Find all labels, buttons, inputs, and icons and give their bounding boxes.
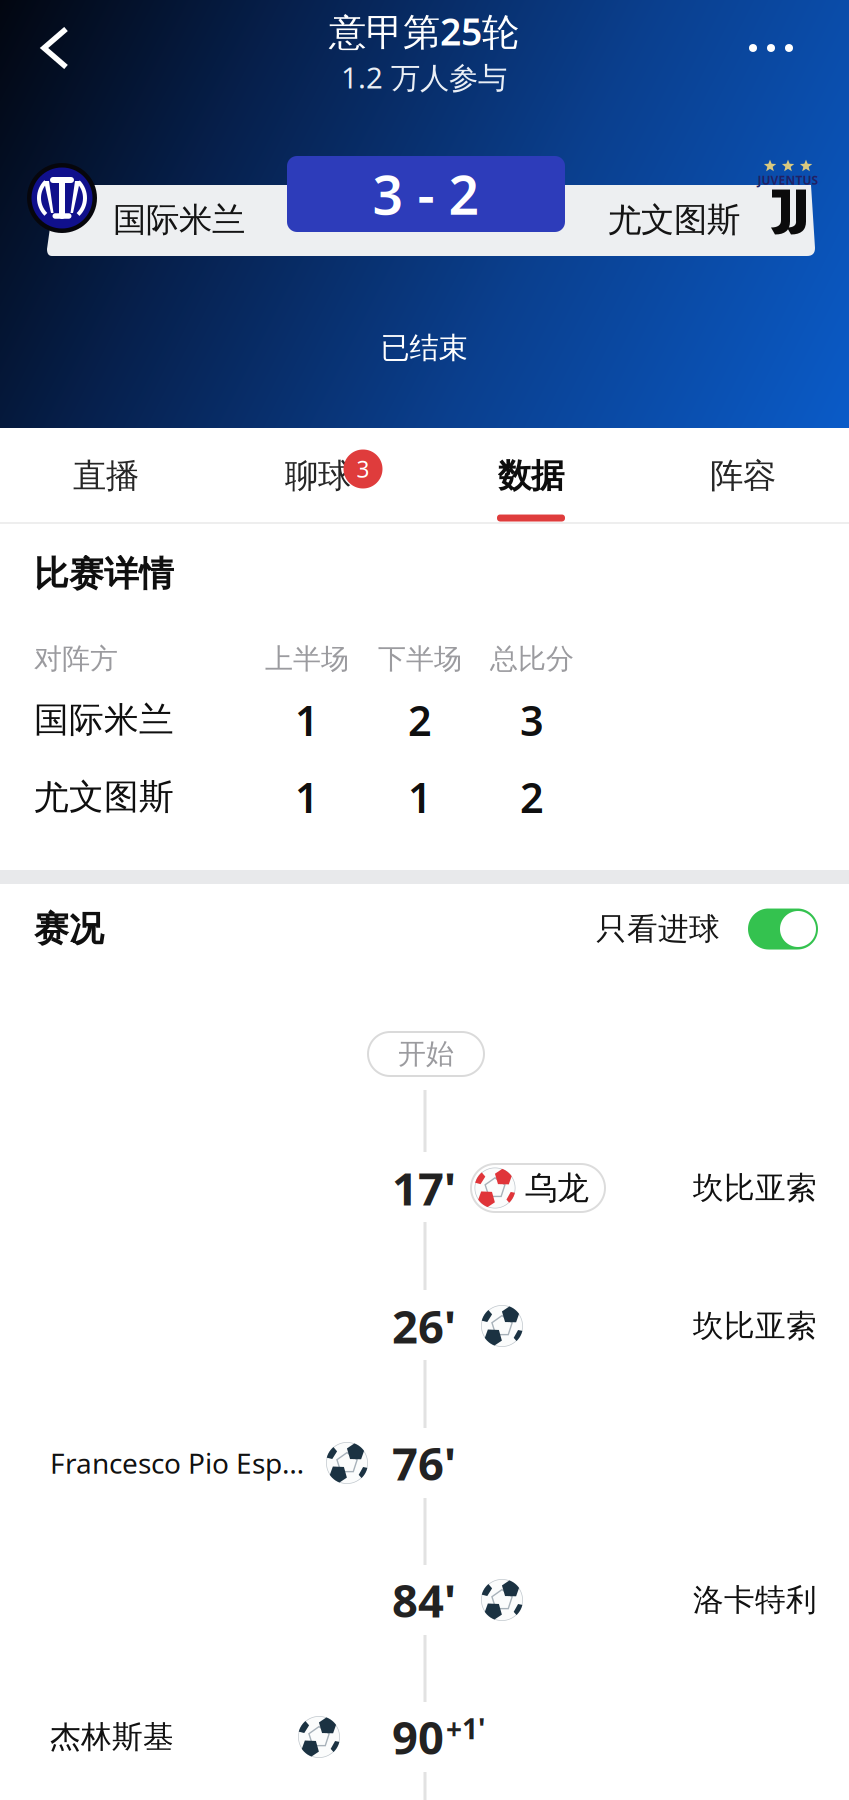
staticText: 84' [392, 1570, 456, 1630]
staticText: 数据 [498, 455, 564, 496]
button[interactable]: More [723, 8, 819, 88]
staticText: 2 [520, 770, 544, 824]
staticText: 杰林斯基 [50, 1718, 174, 1756]
staticText: 1 [295, 770, 319, 824]
staticText: 洛卡特利 [693, 1581, 817, 1619]
staticText: 赛况 [34, 908, 104, 950]
staticText: 已结束 [380, 330, 467, 366]
staticText: Francesco Pio Esp… [50, 1444, 304, 1482]
staticText: 尤文图斯 [34, 776, 174, 818]
staticText: 比赛详情 [34, 553, 174, 595]
staticText: 1 [408, 770, 432, 824]
staticText: 尤文图斯 [608, 199, 740, 240]
staticText: 总比分 [490, 642, 574, 676]
staticText: 乌龙 [525, 1168, 589, 1208]
staticText: 开始 [398, 1037, 454, 1071]
staticText: 意甲第25轮 [329, 6, 519, 56]
staticText: 17' [392, 1158, 456, 1218]
button[interactable]: 阵容 [640, 428, 845, 524]
button[interactable]: 只看进球 [584, 894, 830, 963]
staticText: 2 [408, 693, 432, 747]
staticText: 76' [392, 1433, 456, 1493]
staticText: 国际米兰 [113, 199, 245, 240]
staticText: 坎比亚索 [693, 1169, 817, 1207]
staticText: 1.2 万人参与 [341, 57, 507, 96]
staticText: 阵容 [710, 455, 776, 496]
staticText: 聊球 [285, 455, 351, 496]
button[interactable]: Back [9, 2, 101, 94]
staticText: 只看进球 [596, 910, 720, 948]
staticText: 90 [392, 1707, 444, 1767]
staticText: 国际米兰 [34, 699, 174, 741]
button[interactable]: 数据 [428, 428, 633, 524]
staticText: JUVENTUS [757, 172, 818, 188]
staticText: 对阵方 [34, 642, 118, 676]
button[interactable]: 直播 [3, 428, 208, 524]
staticText: 1 [295, 693, 319, 747]
staticText: 3 [520, 693, 544, 747]
staticText: 上半场 [265, 642, 349, 676]
staticText: 26' [392, 1296, 456, 1356]
staticText: 3 - 2 [372, 159, 479, 229]
button[interactable]: 聊球 [215, 428, 420, 524]
staticText: 直播 [73, 455, 139, 496]
staticText: 3 [356, 454, 369, 484]
staticText: 坎比亚索 [693, 1307, 817, 1345]
staticText: 下半场 [378, 642, 462, 676]
staticText: +1' [446, 1710, 485, 1747]
